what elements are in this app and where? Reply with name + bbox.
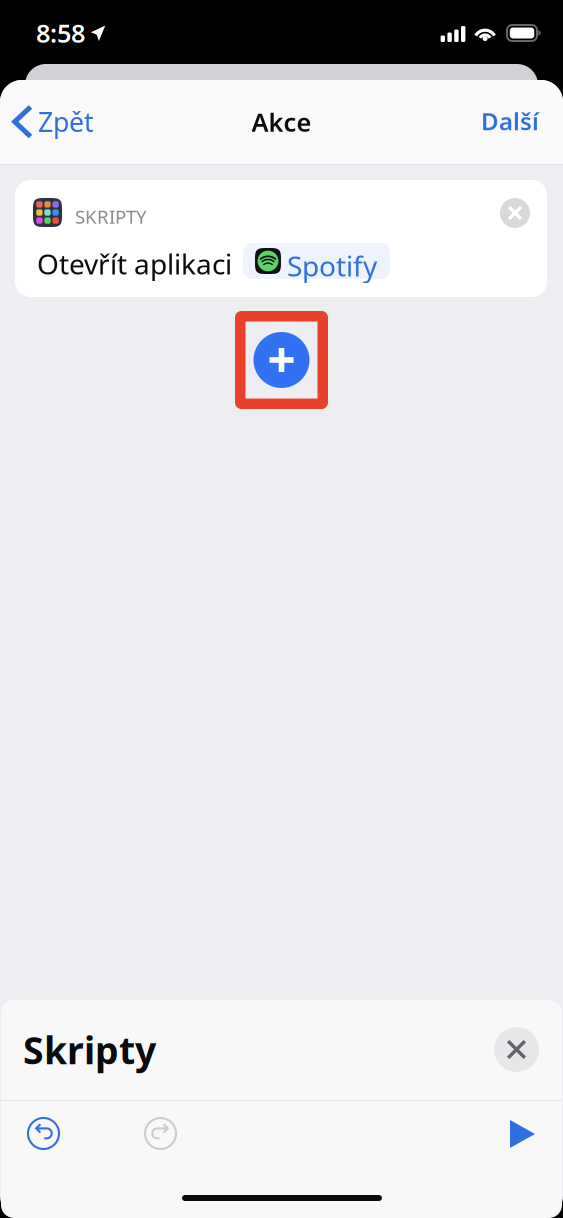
staticText: 8:58	[36, 16, 85, 50]
button[interactable]: Spotify	[243, 243, 390, 279]
button[interactable]: Close	[485, 1018, 548, 1081]
button[interactable]: Run	[491, 1101, 554, 1167]
button[interactable]: Zpět	[0, 96, 104, 147]
staticText: SKRIPTY	[75, 204, 147, 229]
button[interactable]: Další	[467, 94, 563, 148]
button[interactable]: Remove action	[492, 190, 538, 236]
staticText: Zpět	[38, 104, 94, 139]
button[interactable]: Undo	[11, 1101, 76, 1166]
staticText: Další	[481, 105, 539, 137]
button[interactable]: Redo	[128, 1101, 193, 1166]
staticText: Spotify	[287, 247, 377, 284]
staticText: Otevřít aplikaci	[37, 245, 232, 282]
staticText: Akce	[251, 105, 311, 139]
staticText: Skripty	[23, 1025, 156, 1075]
